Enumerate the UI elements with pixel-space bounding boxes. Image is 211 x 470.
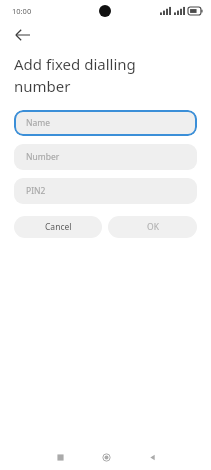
button[interactable]: Back (8, 22, 36, 48)
button[interactable]: Number (14, 144, 197, 170)
button[interactable]: Home (94, 445, 118, 469)
staticText: Add fixed dialling (14, 54, 136, 74)
staticText: PIN2 (26, 185, 46, 197)
staticText: 10:00 (12, 6, 32, 16)
button[interactable]: Name (14, 110, 197, 136)
button[interactable]: Back (140, 445, 164, 469)
staticText: Cancel (45, 221, 72, 233)
button[interactable]: PIN2 (14, 178, 197, 204)
button[interactable]: OK (108, 216, 197, 238)
button[interactable]: Recent apps (48, 445, 72, 469)
staticText: OK (147, 221, 159, 233)
staticText: Number (26, 151, 60, 163)
button[interactable]: Cancel (14, 216, 102, 238)
staticText: number (14, 76, 71, 96)
staticText: Name (26, 117, 50, 129)
